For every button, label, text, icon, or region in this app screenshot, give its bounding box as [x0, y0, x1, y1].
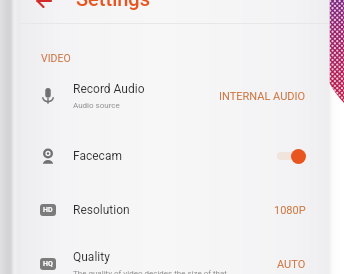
staticText: HD [43, 206, 53, 214]
staticText: Settings [76, 0, 151, 10]
staticText: Resolution [73, 203, 130, 217]
staticText: Audio source [73, 101, 120, 110]
button[interactable]: HD [20, 183, 329, 237]
button[interactable]: Back [29, 0, 59, 12]
staticText: VIDEO [41, 52, 71, 64]
staticText: AUTO [277, 258, 306, 271]
staticText: 1080P [274, 204, 306, 217]
staticText: INTERNAL AUDIO [219, 90, 306, 103]
staticText: HQ [43, 260, 53, 268]
button[interactable]: HQ [20, 237, 329, 274]
staticText: Quality [73, 250, 110, 264]
button[interactable]: Record Audio [20, 63, 329, 129]
staticText: The quality of video decides the size of… [73, 269, 227, 274]
staticText: Facecam [73, 149, 122, 163]
button[interactable]: Facecam [20, 129, 329, 183]
staticText: Record Audio [73, 82, 145, 96]
